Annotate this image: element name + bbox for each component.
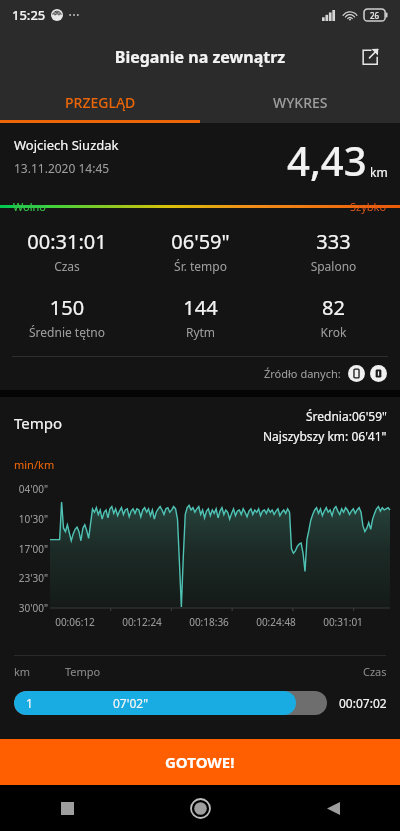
staticText: km [14, 664, 31, 679]
staticText: 00:06:12 [55, 615, 95, 629]
staticText: Średnie tętno [0, 324, 134, 340]
button[interactable]: Recents [0, 785, 134, 831]
staticText: Bieganie na zewnątrz [52, 46, 348, 68]
staticText: 10'30" [8, 512, 48, 526]
button[interactable]: Share [348, 35, 392, 79]
staticText: 23'30" [8, 571, 48, 585]
button[interactable]: Back [267, 785, 400, 831]
staticText: 30'00" [8, 601, 48, 615]
staticText: WYKRES [273, 93, 328, 112]
staticText: Krok [267, 324, 400, 340]
staticText: min/km [14, 457, 55, 472]
staticText: 144 [134, 294, 267, 321]
button[interactable]: Watch source [370, 365, 387, 382]
staticText: 06'59" [134, 228, 267, 255]
button[interactable]: GOTOWE! [0, 739, 400, 785]
button[interactable]: Phone source [348, 365, 365, 382]
staticText: Tempo [65, 664, 101, 679]
staticText: 00:18:36 [189, 615, 229, 629]
staticText: Czas [363, 664, 387, 679]
staticText: 82 [267, 294, 400, 321]
staticText: PRZEGLĄD [65, 93, 136, 112]
staticText: km [370, 164, 388, 180]
staticText: 00:31:01 [323, 615, 363, 629]
staticText: 26 [370, 10, 380, 21]
staticText: Źródło danych: [264, 366, 341, 381]
staticText: 17'00" [8, 542, 48, 556]
button[interactable]: 00:31:01 [0, 228, 134, 274]
staticText: Spalono [267, 258, 400, 274]
button[interactable]: 150 [0, 294, 134, 340]
staticText: Rytm [134, 324, 267, 340]
staticText: 150 [0, 294, 134, 321]
staticText: 13.11.2020 14:45 [14, 160, 110, 176]
staticText: Śr. tempo [134, 258, 267, 274]
staticText: 4,43 [287, 133, 367, 187]
button[interactable]: 1 [14, 686, 387, 720]
staticText: 333 [267, 228, 400, 255]
staticText: 04'00" [8, 482, 48, 496]
staticText: 00:31:01 [0, 228, 134, 255]
staticText: 00:12:24 [122, 615, 162, 629]
staticText: GOTOWE! [165, 752, 235, 772]
staticText: Wojciech Siuzdak [14, 136, 119, 154]
button[interactable]: 06'59" [134, 228, 267, 274]
button[interactable]: 82 [267, 294, 400, 340]
button[interactable]: WYKRES [200, 84, 400, 120]
staticText: Średnia:06'59" [306, 408, 387, 424]
staticText: Szybko [350, 199, 387, 214]
staticText: 00:07:02 [339, 695, 387, 711]
staticText: 1 [26, 695, 33, 711]
button[interactable]: 333 [267, 228, 400, 274]
staticText: 00:24:48 [256, 615, 296, 629]
staticText: Tempo [14, 413, 63, 433]
staticText: Najszybszy km: 06'41" [263, 428, 387, 444]
staticText: Wolno [13, 199, 46, 214]
staticText: 07'02" [113, 695, 149, 711]
button[interactable]: Home [134, 785, 267, 831]
staticText: 15:25 [12, 6, 46, 24]
button[interactable]: 144 [134, 294, 267, 340]
staticText: Czas [0, 258, 134, 274]
button[interactable]: PRZEGLĄD [0, 84, 200, 120]
